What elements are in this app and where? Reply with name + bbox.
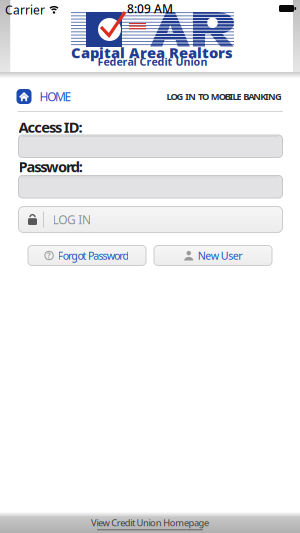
staticText: Homepage [163,517,209,529]
staticText: Password: [18,157,83,176]
staticText: MOBILE [211,90,241,103]
staticText: Federal Credit Union [97,54,207,69]
button[interactable]: ? [28,245,146,265]
staticText: 8:09 AM [127,0,173,16]
button[interactable]: New User [154,245,272,265]
button[interactable]: View [87,515,213,532]
staticText: IN [185,90,196,103]
staticText: Union [136,517,162,529]
button[interactable]: HOME [16,88,72,104]
staticText: TO [198,90,209,103]
staticText: LOG [166,90,183,103]
staticText: Capital Area Realtors [71,43,233,62]
staticText: View [91,517,109,529]
staticText: Carrier [5,2,45,18]
staticText: Credit [111,517,135,529]
staticText: ? [47,250,51,261]
staticText: BANKING [243,90,282,103]
staticText: Access ID: [18,117,83,137]
button[interactable]: LOG IN [18,206,282,232]
staticText: HOME [39,88,72,104]
staticText: Forgot Password [58,248,129,263]
button[interactable]: Password [18,175,282,198]
staticText: LOG IN [52,211,91,227]
staticText: New User [198,248,242,263]
button[interactable]: Access ID [18,135,282,157]
